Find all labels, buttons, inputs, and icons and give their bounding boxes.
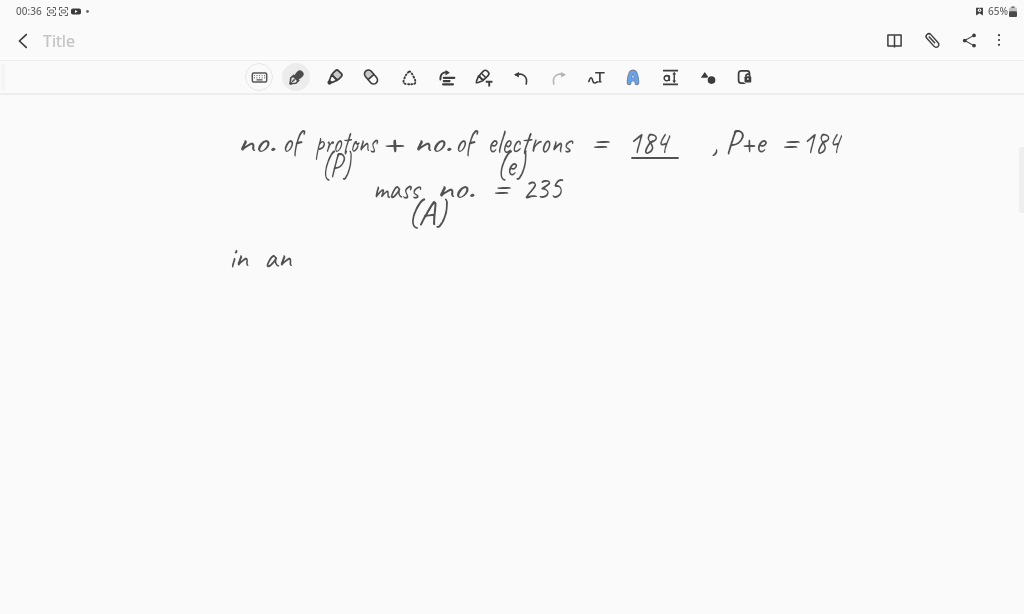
button[interactable]: Share xyxy=(950,21,988,59)
staticText: no. xyxy=(436,167,476,209)
button[interactable]: Highlighter xyxy=(320,63,348,91)
staticText: Title xyxy=(43,30,75,52)
button[interactable]: More options xyxy=(980,21,1018,59)
staticText: of xyxy=(282,121,301,163)
staticText: 184 xyxy=(802,121,840,163)
button[interactable]: Reading mode xyxy=(875,21,913,59)
button[interactable]: Keyboard xyxy=(245,63,273,91)
staticText: + xyxy=(380,121,403,163)
button[interactable]: Convert handwriting xyxy=(469,63,497,91)
staticText: an xyxy=(264,236,292,278)
button[interactable]: Lock note xyxy=(731,63,759,91)
button[interactable]: Back xyxy=(5,23,41,59)
staticText: electrons xyxy=(487,121,572,163)
button[interactable]: Attach file xyxy=(913,21,951,59)
staticText: mass xyxy=(373,167,420,209)
button[interactable]: Insert space xyxy=(432,63,460,91)
staticText: (e) xyxy=(496,144,526,186)
staticText: (P) xyxy=(321,144,351,186)
button[interactable]: Undo xyxy=(507,63,535,91)
button[interactable]: Handwriting to text xyxy=(582,63,610,91)
button[interactable]: Pen xyxy=(282,63,310,91)
staticText: of xyxy=(455,121,474,163)
button[interactable]: Shapes xyxy=(694,63,722,91)
staticText: , xyxy=(711,121,719,163)
staticText: no. xyxy=(237,121,277,163)
button[interactable]: Eraser xyxy=(357,63,385,91)
button[interactable]: Text recognition xyxy=(619,63,647,91)
staticText: in xyxy=(229,236,249,278)
button[interactable]: Redo xyxy=(544,63,572,91)
staticText: P+e xyxy=(725,121,765,163)
staticText: 65% xyxy=(988,4,1008,18)
button[interactable]: Line spacing xyxy=(656,63,684,91)
button[interactable]: Selection xyxy=(395,63,423,91)
staticText: no. xyxy=(413,121,453,163)
staticText: 235 xyxy=(522,167,562,209)
staticText: (A) xyxy=(407,192,447,234)
staticText: = xyxy=(490,167,510,209)
staticText: 184 xyxy=(628,121,668,163)
staticText: = xyxy=(779,121,799,163)
staticText: protons xyxy=(315,121,377,163)
staticText: 00:36 xyxy=(16,4,42,18)
staticText: = xyxy=(589,121,609,163)
